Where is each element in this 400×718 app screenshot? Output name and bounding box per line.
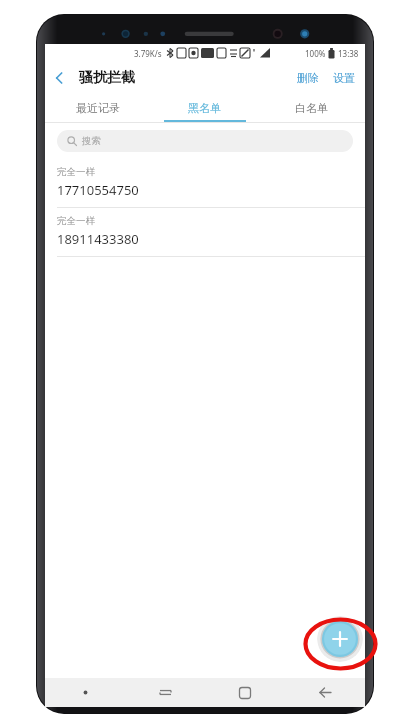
button[interactable]: 完全一样 (45, 159, 365, 207)
staticText: 设置 (333, 71, 355, 85)
button[interactable]: Recents (125, 678, 205, 707)
staticText: 18911433380 (57, 230, 139, 248)
button[interactable]: 白名单 (258, 94, 365, 122)
button[interactable]: Home (205, 678, 285, 707)
staticText: 骚扰拦截 (79, 69, 135, 87)
staticText: 17710554750 (57, 181, 139, 199)
button[interactable]: Menu dot (45, 678, 125, 707)
staticText: 3.79K/s (134, 48, 162, 59)
staticText: 删除 (297, 71, 319, 85)
staticText: 黑名单 (188, 101, 221, 115)
button[interactable]: 完全一样 (45, 208, 365, 256)
button[interactable]: 黑名单 (151, 94, 258, 122)
button[interactable]: Back (45, 62, 75, 94)
staticText: 完全一样 (57, 215, 95, 227)
button[interactable]: Back (285, 678, 365, 707)
staticText: 100% (305, 48, 326, 59)
staticText: 白名单 (295, 101, 328, 115)
button[interactable]: 设置 (326, 66, 365, 90)
staticText: 搜索 (82, 135, 101, 147)
staticText: 最近记录 (76, 101, 120, 115)
staticText: 完全一样 (57, 166, 95, 178)
button[interactable]: Add to blacklist (317, 616, 363, 662)
other: Add to blacklist (317, 616, 363, 662)
button[interactable]: 搜索 (57, 130, 353, 152)
button[interactable]: 最近记录 (45, 94, 151, 122)
staticText: 13:38 (338, 48, 359, 59)
button[interactable]: 删除 (290, 66, 326, 90)
